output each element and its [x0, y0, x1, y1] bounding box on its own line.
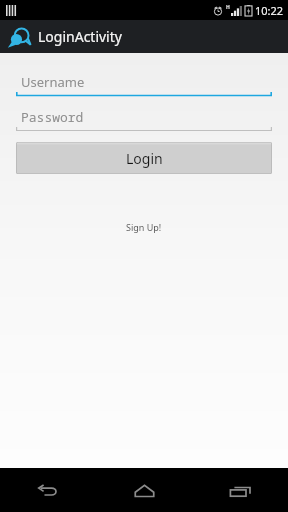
staticText: H: [226, 4, 230, 11]
staticText: Login: [126, 149, 163, 168]
button[interactable]: Login: [16, 142, 272, 174]
button[interactable]: Home: [96, 468, 192, 512]
staticText: Password: [21, 108, 84, 126]
button[interactable]: App icon: [7, 25, 31, 49]
button[interactable]: Password: [16, 104, 272, 139]
button[interactable]: Username: [16, 69, 272, 104]
staticText: Username: [21, 73, 85, 91]
staticText: Sign Up!: [126, 221, 162, 233]
staticText: 10:22: [255, 3, 284, 18]
button[interactable]: Sign Up!: [0, 221, 288, 233]
button[interactable]: Recent apps: [192, 468, 288, 512]
button[interactable]: Back: [0, 468, 96, 512]
staticText: LoginActivity: [38, 27, 122, 46]
